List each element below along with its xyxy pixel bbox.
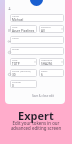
staticText: Counter (12, 80, 22, 83)
button[interactable]: Algorithm (39, 58, 64, 66)
button[interactable]: Name (10, 14, 64, 22)
button[interactable]: Type (10, 25, 37, 33)
staticText: Type (12, 25, 18, 28)
other: icon (8, 7, 11, 10)
staticText: 6 (41, 73, 43, 77)
staticText: Michael (12, 18, 24, 22)
staticText: Name (12, 14, 19, 17)
other: icon (8, 51, 11, 54)
staticText: All (41, 29, 45, 33)
staticText: Save & close edit (32, 94, 55, 98)
other: Profile (30, 0, 43, 6)
button[interactable]: Counter (10, 80, 37, 88)
button[interactable]: Digits (39, 69, 64, 77)
button[interactable]: Secret (10, 47, 64, 55)
staticText: Azure Pipelines (12, 29, 35, 33)
staticText: TOTP (12, 62, 20, 66)
staticText: Notes (12, 36, 19, 39)
staticText: 0 (12, 84, 14, 88)
other: icon (8, 29, 11, 32)
staticText: Expert (18, 108, 54, 123)
button[interactable]: Platform (39, 25, 64, 33)
staticText: Digits (41, 69, 48, 72)
other: icon (8, 40, 11, 43)
staticText: Secret (12, 47, 19, 50)
staticText: Type (12, 58, 18, 61)
staticText: 30 (12, 73, 16, 77)
staticText: Edit your tokens in our advanced editing… (0, 120, 72, 131)
button[interactable]: Type (10, 58, 37, 66)
staticText: Period (seconds) (12, 69, 31, 72)
button[interactable]: Period (seconds) (10, 69, 37, 77)
staticText: Algorithm (41, 58, 53, 61)
staticText: SHA256 (41, 62, 53, 66)
staticText: Platform (41, 25, 51, 28)
button[interactable]: Notes (10, 36, 64, 44)
other: icon (8, 73, 11, 76)
